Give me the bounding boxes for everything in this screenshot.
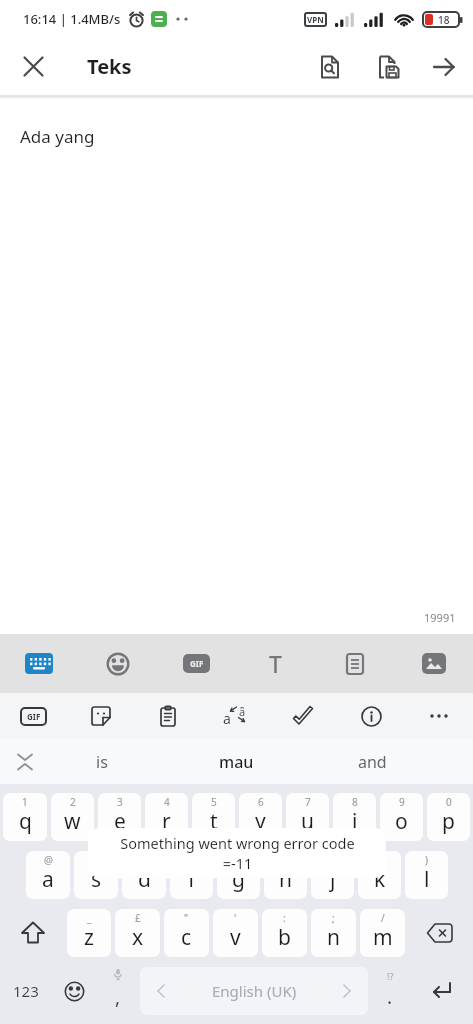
button[interactable]: 0 (427, 793, 470, 841)
button[interactable] (3, 904, 63, 962)
staticText: b (278, 923, 291, 952)
staticText: c (181, 923, 192, 952)
staticText: n (327, 923, 340, 952)
staticText: h (279, 865, 292, 894)
button[interactable] (0, 634, 78, 693)
staticText: 7 (305, 795, 311, 809)
button[interactable]: ) (405, 851, 448, 899)
button[interactable]: 4 (145, 793, 188, 841)
staticText: 2 (70, 795, 76, 809)
staticText: 16:14 | 1.4MB/s (23, 10, 121, 28)
button[interactable]: GIF (0, 693, 67, 739)
button[interactable]: ( (358, 851, 401, 899)
button[interactable]: and (358, 751, 387, 773)
staticText: u (301, 807, 314, 836)
staticText: 4 (164, 795, 170, 809)
staticText: a (223, 709, 231, 728)
staticText: o (395, 807, 408, 836)
button[interactable]: 5 (192, 793, 235, 841)
staticText: GIF (190, 658, 204, 669)
button[interactable]: English (UK) (140, 967, 368, 1015)
button[interactable]: a (201, 693, 269, 739)
button[interactable]: £ (115, 909, 160, 957)
staticText: 8 (352, 795, 358, 809)
button[interactable]: / (360, 909, 405, 957)
staticText: ; (332, 911, 335, 925)
button[interactable]: 1 (3, 793, 47, 841)
staticText: 6 (258, 795, 264, 809)
staticText: 3 (117, 795, 123, 809)
staticText: , (115, 984, 121, 1010)
staticText: / (381, 911, 385, 925)
button[interactable] (394, 634, 473, 693)
button[interactable]: mau (219, 751, 254, 773)
button[interactable] (23, 56, 44, 77)
staticText: y (255, 807, 266, 836)
button[interactable]: € (122, 851, 166, 899)
button[interactable]: # (74, 851, 118, 899)
button[interactable] (78, 634, 157, 693)
button[interactable] (431, 54, 457, 80)
button[interactable] (12, 749, 38, 775)
staticText: p (442, 807, 455, 836)
button[interactable]: 6 (239, 793, 282, 841)
staticText: l (424, 865, 430, 894)
button[interactable]: + (311, 851, 354, 899)
button[interactable]: _ (170, 851, 213, 899)
staticText: _ (87, 911, 92, 925)
staticText: j (330, 865, 336, 894)
button[interactable]: ; (311, 909, 356, 957)
button[interactable]: 123 (3, 962, 48, 1020)
button[interactable]: !? (372, 962, 408, 1020)
button[interactable] (269, 693, 337, 739)
staticText: 0 (446, 795, 452, 809)
button[interactable]: , (100, 962, 136, 1020)
button[interactable] (52, 962, 96, 1020)
staticText: £ (135, 911, 141, 925)
button[interactable]: - (264, 851, 307, 899)
staticText: i (352, 807, 358, 836)
button[interactable]: 7 (286, 793, 329, 841)
button[interactable] (317, 54, 343, 80)
button[interactable]: 8 (333, 793, 376, 841)
staticText: Teks (87, 53, 132, 80)
button[interactable] (375, 54, 401, 80)
staticText: 5 (211, 795, 217, 809)
staticText: T (269, 648, 282, 679)
button[interactable] (67, 693, 134, 739)
staticText: 18 (438, 13, 450, 27)
button[interactable] (409, 904, 470, 962)
staticText: f (188, 865, 196, 894)
staticText: m (373, 923, 393, 952)
button[interactable]: : (262, 909, 307, 957)
staticText: x (132, 923, 144, 952)
staticText: Ada yang (20, 125, 95, 148)
staticText: s (91, 865, 102, 894)
staticText: t (210, 807, 218, 836)
button[interactable] (337, 693, 405, 739)
button[interactable]: 9 (380, 793, 423, 841)
button[interactable]: ' (213, 909, 258, 957)
button[interactable]: _ (67, 909, 111, 957)
button[interactable] (315, 634, 394, 693)
staticText: VPN (307, 14, 324, 25)
button[interactable]: is (96, 751, 108, 773)
button[interactable] (134, 693, 201, 739)
button[interactable]: & (217, 851, 260, 899)
button[interactable]: " (164, 909, 209, 957)
staticText: z (84, 923, 94, 952)
button[interactable]: @ (26, 851, 70, 899)
staticText: !? (387, 970, 394, 982)
button[interactable]: 3 (98, 793, 141, 841)
button[interactable]: T (236, 634, 315, 693)
staticText: e (114, 807, 126, 836)
button[interactable]: GIF (157, 634, 236, 693)
button[interactable]: 2 (51, 793, 94, 841)
staticText: d (138, 865, 151, 894)
button[interactable] (412, 962, 470, 1020)
button[interactable] (405, 693, 473, 739)
staticText: ǟ (239, 704, 246, 719)
staticText: k (374, 865, 386, 894)
